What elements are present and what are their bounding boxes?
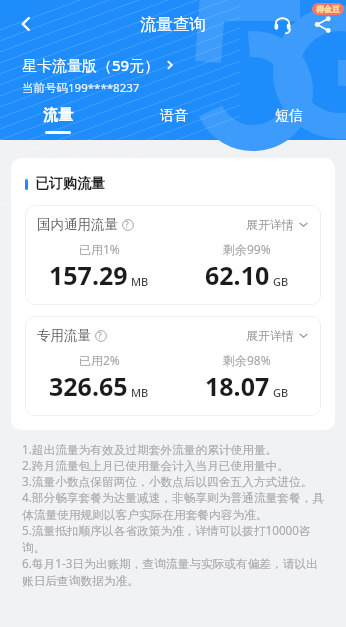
staticText: 展开详情 — [246, 328, 294, 343]
button[interactable]: Share — [302, 4, 342, 44]
staticText: 剩余98% — [223, 352, 271, 368]
staticText: 157.29 — [49, 258, 128, 292]
staticText: 流量 — [43, 106, 73, 125]
button[interactable]: 流量 — [0, 100, 116, 140]
staticText: 已订购流量 — [35, 175, 105, 193]
staticText: 4.部分畅享套餐为达量减速，非畅享则为普通流量套餐，具体流量使用规则以客户实际在… — [22, 489, 324, 522]
staticText: 1.超出流量为有效及过期套外流量的累计使用量。 — [22, 441, 278, 457]
staticText: 剩余99% — [223, 241, 271, 257]
button[interactable]: 专用流量 — [25, 316, 321, 416]
button[interactable]: 国内通用流量 — [25, 205, 321, 305]
staticText: 3.流量小数点保留两位，小数点后以四舍五入方式进位。 — [22, 473, 313, 489]
staticText: 国内通用流量 — [37, 216, 118, 233]
staticText: GB — [273, 274, 289, 289]
staticText: 2.跨月流量包上月已使用量会计入当月已使用量中。 — [22, 457, 289, 473]
staticText: 流量查询 — [140, 14, 206, 35]
staticText: 当前号码199****8237 — [22, 80, 140, 96]
staticText: 已用2% — [79, 352, 120, 368]
button[interactable]: 语音 — [116, 100, 231, 140]
staticText: GB — [273, 385, 289, 400]
staticText: 专用流量 — [37, 327, 91, 344]
staticText: 星卡流量版（59元） — [22, 55, 160, 75]
staticText: 326.65 — [49, 369, 128, 403]
button[interactable]: 短信 — [231, 100, 346, 140]
button[interactable]: Customer service — [262, 4, 302, 44]
staticText: 62.10 — [205, 258, 270, 292]
staticText: 得金豆 — [316, 4, 340, 14]
staticText: MB — [131, 274, 149, 289]
staticText: MB — [131, 385, 149, 400]
staticText: 语音 — [160, 107, 188, 125]
staticText: 展开详情 — [246, 217, 294, 232]
staticText: 5.流量抵扣顺序以各省政策为准，详情可以拨打10000咨询。 — [22, 522, 324, 555]
staticText: 短信 — [275, 107, 303, 125]
staticText: ? — [98, 330, 102, 342]
button[interactable]: Back — [6, 4, 46, 44]
staticText: 6.每月1-3日为出账期，查询流量与实际或有偏差，请以出账日后查询数据为准。 — [22, 555, 324, 588]
button[interactable]: 星卡流量版（59元） — [22, 55, 176, 75]
staticText: 18.07 — [205, 369, 270, 403]
staticText: ? — [125, 219, 129, 231]
staticText: 已用1% — [79, 241, 120, 257]
